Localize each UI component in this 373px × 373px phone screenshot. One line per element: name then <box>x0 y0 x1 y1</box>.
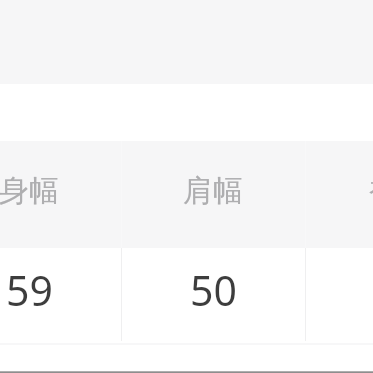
staticText: 59 <box>6 262 53 318</box>
staticText: 50 <box>190 262 237 318</box>
staticText: 身幅 <box>0 172 59 210</box>
staticText: 袖丈 <box>369 172 373 210</box>
staticText: 肩幅 <box>183 172 243 210</box>
button[interactable]: 59 <box>0 248 121 343</box>
button[interactable]: 50 <box>121 248 305 343</box>
button[interactable]: 身幅 <box>0 141 121 248</box>
button[interactable]: 肩幅 <box>121 141 305 248</box>
